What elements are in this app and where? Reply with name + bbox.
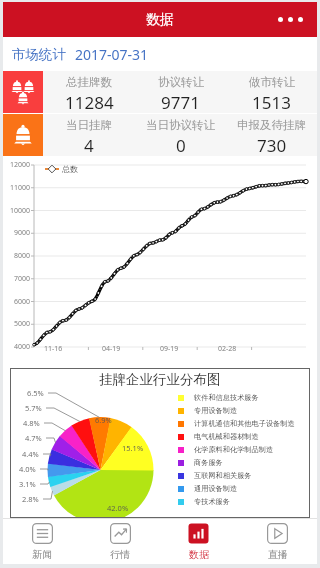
staticText: 11000 (10, 183, 31, 193)
staticText: 4 (84, 134, 94, 156)
staticText: 02-28 (218, 344, 237, 354)
staticText: 当日挂牌 (66, 118, 112, 132)
staticText: 5.7% (25, 403, 42, 413)
staticText: 软件和信息技术服务 (194, 393, 259, 402)
staticText: 挂牌企业行业分布图 (99, 371, 221, 388)
staticText: 4.8% (23, 418, 40, 428)
staticText: 12000 (10, 160, 31, 170)
staticText: 3.1% (19, 479, 36, 489)
button[interactable]: 行情 (81, 519, 159, 564)
staticText: 直播 (268, 548, 288, 561)
staticText: 2.8% (22, 494, 39, 504)
staticText: 计算机通信和其他电子设备制造 (194, 419, 295, 428)
button[interactable]: More options (264, 7, 317, 32)
staticText: 15.1% (122, 443, 144, 453)
button[interactable]: Listing statistics (3, 114, 43, 156)
staticText: 9000 (14, 228, 31, 238)
staticText: 6.5% (27, 388, 44, 398)
staticText: 总数 (62, 164, 78, 174)
staticText: 8000 (14, 251, 31, 261)
staticText: 09-19 (160, 344, 179, 354)
staticText: 申报及待挂牌 (237, 118, 306, 132)
staticText: 730 (257, 134, 287, 156)
button[interactable]: 直播 (238, 519, 317, 564)
staticText: 6.9% (95, 415, 112, 425)
staticText: 10000 (10, 206, 31, 216)
staticText: 行情 (110, 548, 130, 561)
button[interactable]: Listing statistics (3, 71, 43, 113)
staticText: 新闻 (32, 548, 52, 561)
staticText: 互联网和相关服务 (194, 471, 252, 480)
staticText: 做市转让 (249, 75, 295, 89)
staticText: 9771 (161, 91, 200, 113)
button[interactable]: 数据 (159, 519, 238, 564)
staticText: 数据 (189, 548, 209, 561)
staticText: 当日协议转让 (146, 118, 215, 132)
staticText: 4.7% (25, 433, 42, 443)
staticText: 专用设备制造 (194, 406, 238, 415)
staticText: 04-19 (102, 344, 121, 354)
staticText: 通用设备制造 (194, 484, 238, 493)
staticText: 1513 (252, 91, 291, 113)
staticText: 7000 (14, 274, 31, 284)
staticText: 0 (176, 134, 186, 156)
staticText: 总挂牌数 (66, 75, 112, 89)
staticText: 11-16 (44, 344, 63, 354)
button[interactable]: 新闻 (3, 519, 81, 564)
staticText: 5000 (14, 319, 31, 329)
staticText: 6000 (14, 297, 31, 307)
staticText: 4000 (14, 342, 31, 352)
staticText: 市场统计 (12, 46, 66, 63)
staticText: 11284 (65, 91, 114, 113)
staticText: 化学原料和化学制品制造 (194, 445, 274, 454)
staticText: 协议转让 (158, 75, 204, 89)
staticText: 4.0% (19, 464, 36, 474)
staticText: 商务服务 (194, 458, 223, 467)
staticText: 4.4% (22, 449, 39, 459)
staticText: 电气机械和器材制造 (194, 432, 259, 441)
staticText: 专技术服务 (194, 497, 230, 506)
staticText: 数据 (146, 11, 174, 29)
staticText: 42.0% (107, 503, 129, 513)
staticText: 2017-07-31 (75, 45, 149, 64)
